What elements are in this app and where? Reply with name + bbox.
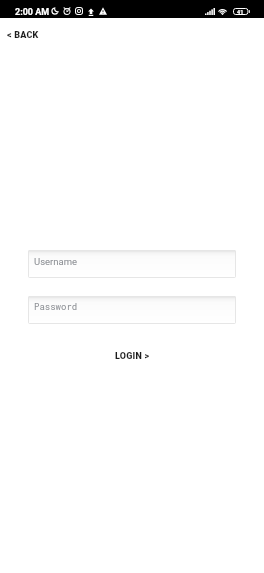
staticText: 41: [237, 9, 244, 15]
button[interactable]: < BACK: [3, 26, 43, 45]
button[interactable]: Password: [28, 296, 236, 324]
staticText: LOGIN >: [115, 351, 150, 362]
staticText: Username: [34, 256, 78, 267]
staticText: < BACK: [7, 30, 39, 41]
button[interactable]: LOGIN >: [101, 346, 164, 367]
staticText: Password: [34, 301, 78, 313]
staticText: 2:00 AM: [15, 7, 50, 18]
button[interactable]: Username: [28, 250, 236, 278]
